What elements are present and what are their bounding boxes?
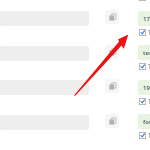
button[interactable]: tes — [138, 45, 150, 60]
staticText: fou — [143, 118, 150, 126]
button[interactable] — [0, 80, 89, 95]
staticText: T — [148, 97, 150, 106]
button[interactable]: Copy — [105, 79, 119, 93]
button[interactable]: T — [139, 28, 150, 37]
staticText: 193 — [143, 84, 150, 92]
button[interactable] — [139, 0, 146, 1]
staticText: 170 — [143, 15, 150, 23]
staticText: T — [148, 62, 150, 71]
button[interactable]: 193 — [138, 80, 150, 95]
staticText: tes — [143, 49, 150, 57]
button[interactable]: 170 — [138, 11, 150, 26]
button[interactable]: T — [139, 62, 150, 71]
button[interactable]: T — [139, 97, 150, 106]
staticText: T — [148, 131, 150, 140]
button[interactable]: T — [139, 131, 150, 140]
button[interactable]: fou — [138, 114, 150, 129]
button[interactable]: Copy — [105, 114, 119, 128]
staticText: T — [148, 28, 150, 37]
button[interactable]: Copy — [105, 10, 119, 24]
button[interactable]: Copy — [105, 45, 119, 59]
